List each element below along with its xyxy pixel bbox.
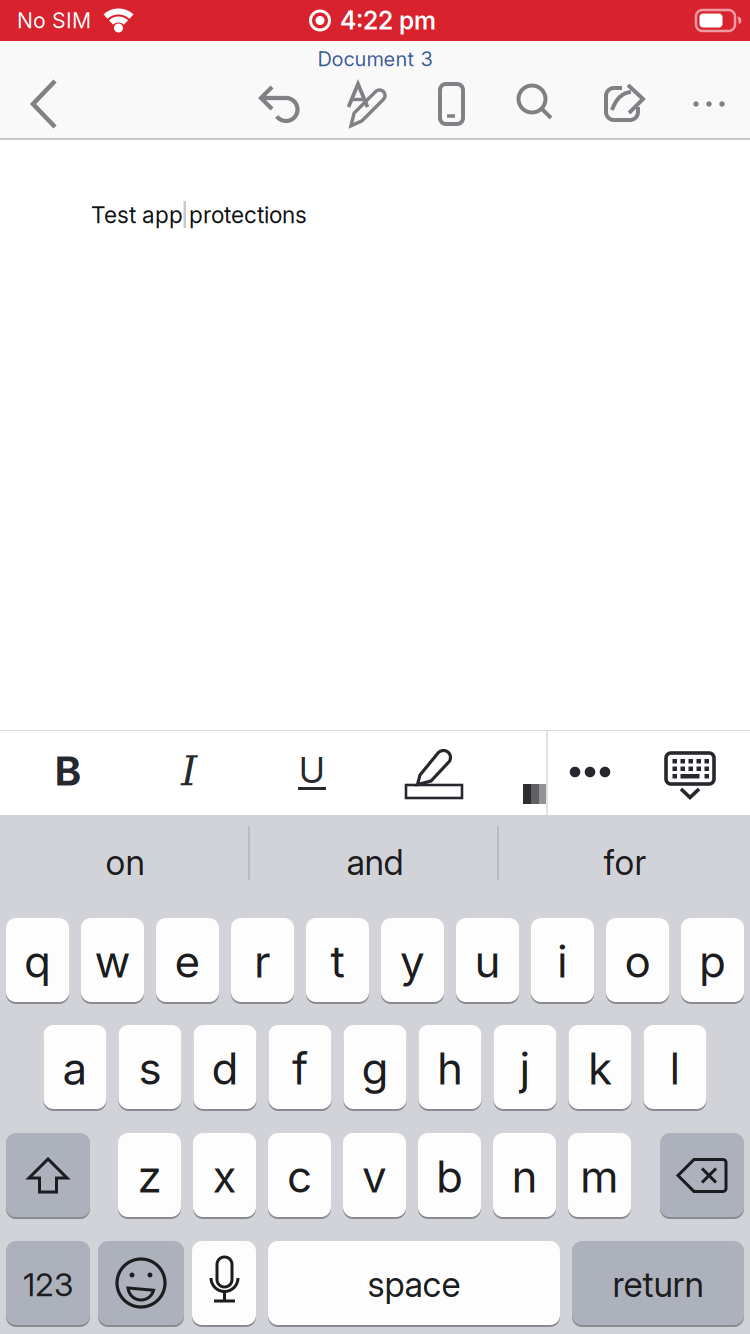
staticText: k [588,1042,612,1095]
staticText: h [437,1042,463,1095]
staticText: for [603,841,646,883]
staticText: 4:22 pm [340,6,436,35]
staticText: c [287,1150,312,1203]
staticText: Test app protections [91,201,307,229]
staticText: z [137,1150,161,1203]
staticText: o [624,935,650,988]
staticText: No SIM [17,8,91,33]
staticText: on [105,841,144,883]
staticText: p [699,935,726,988]
staticText: l [669,1042,680,1095]
staticText: b [436,1150,463,1203]
staticText: return [612,1263,703,1305]
staticText: j [519,1042,530,1095]
staticText: r [254,935,271,988]
staticText: m [580,1150,619,1203]
staticText: v [362,1150,387,1203]
staticText: space [367,1263,460,1305]
staticText: s [138,1042,161,1095]
staticText: n [511,1150,537,1203]
staticText: B [55,747,81,795]
staticText: w [94,935,130,988]
staticText: I [181,747,197,795]
staticText: q [24,935,51,988]
staticText: x [212,1150,236,1203]
staticText: e [174,935,200,988]
staticText: y [400,935,425,988]
staticText: a [62,1042,87,1095]
staticText: f [292,1042,308,1095]
staticText: t [330,935,344,988]
staticText: i [557,935,568,988]
staticText: 123 [23,1265,73,1304]
staticText: Document 3 [317,47,432,71]
staticText: U [299,748,325,792]
staticText: g [361,1042,388,1095]
staticText: and [346,841,403,883]
staticText: d [211,1042,238,1095]
staticText: u [474,935,500,988]
